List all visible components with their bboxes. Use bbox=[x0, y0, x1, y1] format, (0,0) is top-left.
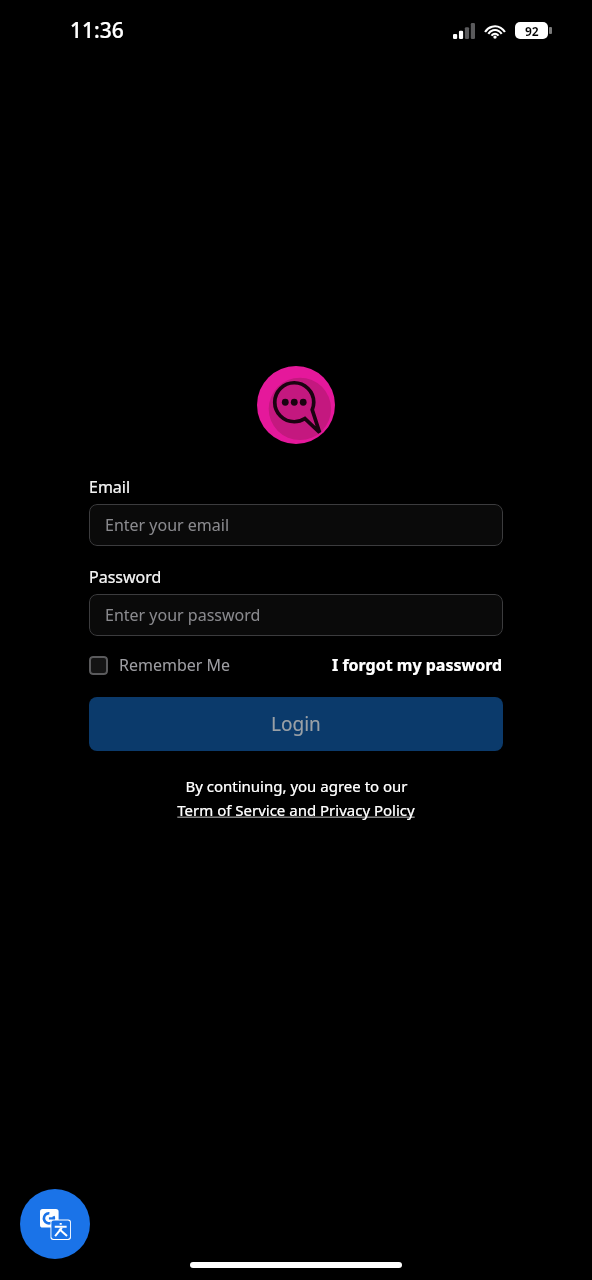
button[interactable]: Translate bbox=[20, 1189, 90, 1259]
button[interactable]: Remember Me bbox=[89, 654, 231, 676]
staticText: Enter your password bbox=[105, 604, 261, 626]
staticText: By continuing, you agree to our bbox=[185, 776, 408, 796]
staticText: Email bbox=[89, 476, 131, 498]
button[interactable]: Term of Service and Privacy Policy bbox=[177, 800, 415, 820]
button[interactable]: Login bbox=[89, 697, 503, 751]
staticText: Password bbox=[89, 566, 162, 588]
staticText: Enter your email bbox=[105, 514, 230, 536]
staticText: Remember Me bbox=[119, 654, 231, 676]
button[interactable]: Enter your email bbox=[89, 504, 503, 546]
staticText: 11:36 bbox=[70, 16, 124, 45]
button[interactable]: I forgot my password bbox=[332, 654, 503, 676]
staticText: I forgot my password bbox=[332, 654, 503, 676]
staticText: 92 bbox=[525, 23, 539, 39]
staticText: Login bbox=[271, 711, 321, 737]
staticText: Term of Service and Privacy Policy bbox=[177, 800, 415, 820]
button[interactable]: Enter your password bbox=[89, 594, 503, 636]
